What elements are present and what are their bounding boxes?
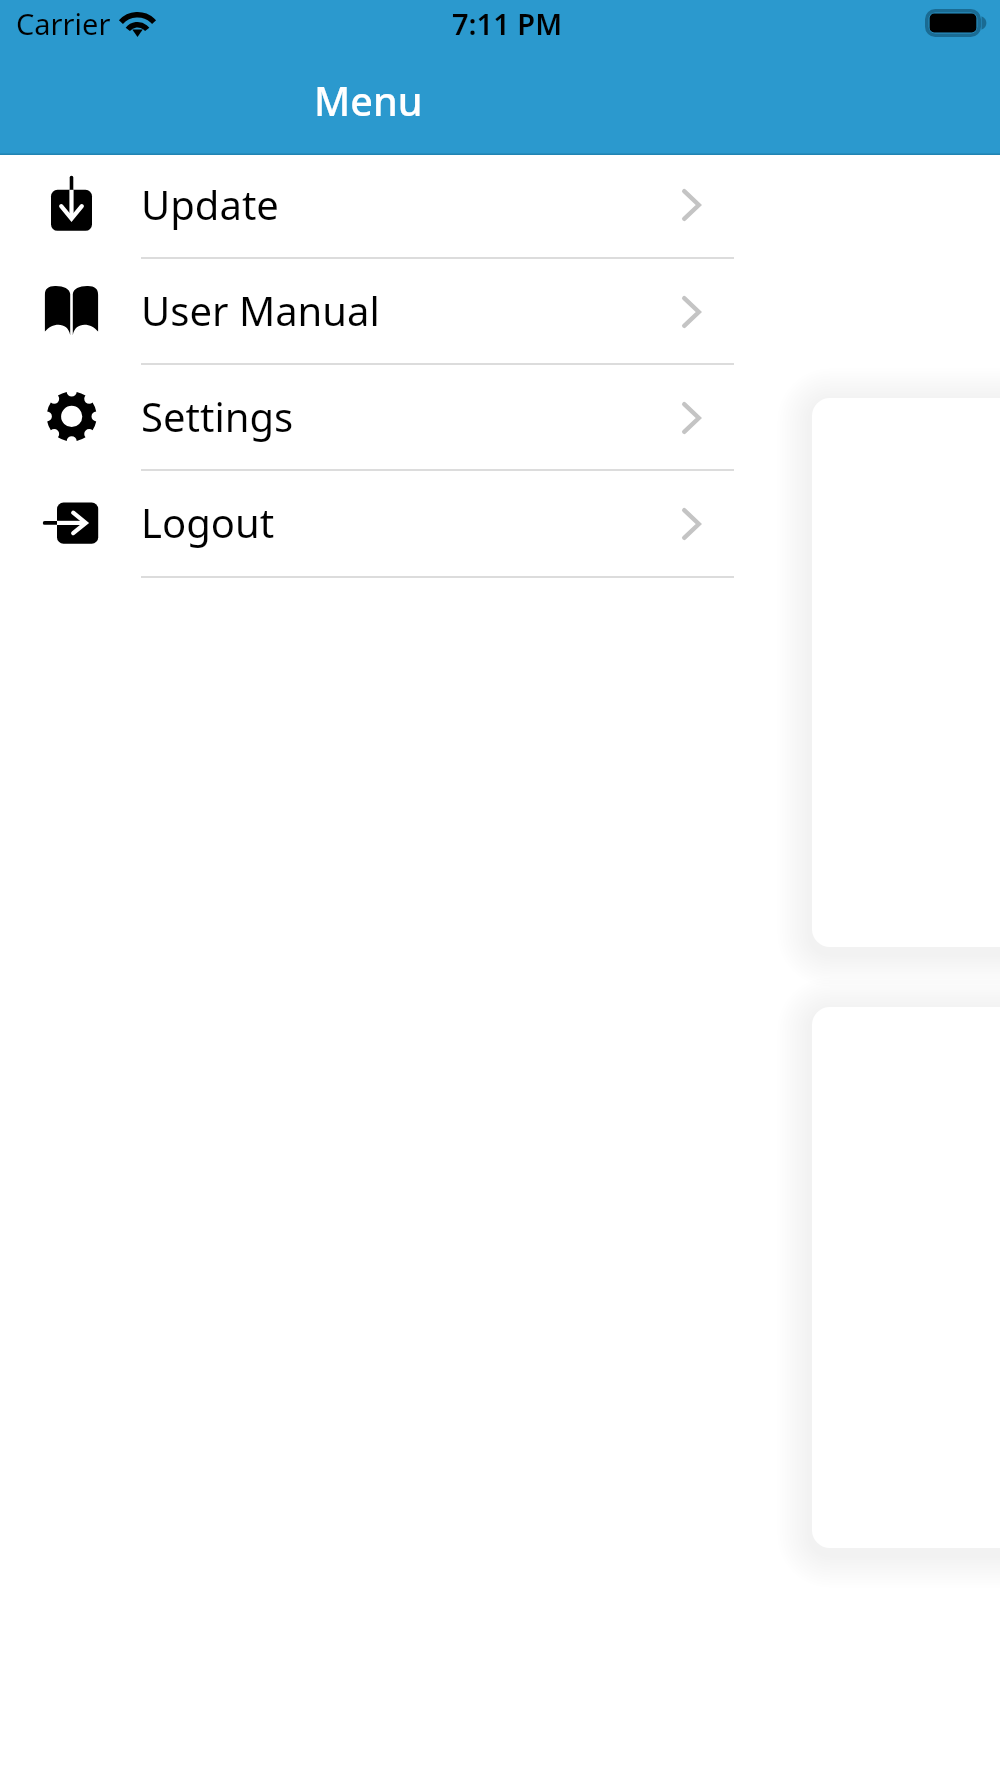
button[interactable]: Logout: [0, 470, 738, 577]
staticText: Menu: [314, 74, 423, 128]
staticText: User Manual: [141, 283, 380, 337]
staticText: Carrier: [16, 4, 111, 43]
button[interactable]: User Manual: [0, 258, 738, 364]
button[interactable]: Settings: [0, 364, 738, 470]
staticText: Settings: [141, 389, 294, 443]
staticText: 7:11 PM: [452, 4, 563, 43]
staticText: Logout: [141, 495, 275, 549]
staticText: Update: [141, 177, 279, 231]
button[interactable]: Update: [0, 155, 738, 258]
